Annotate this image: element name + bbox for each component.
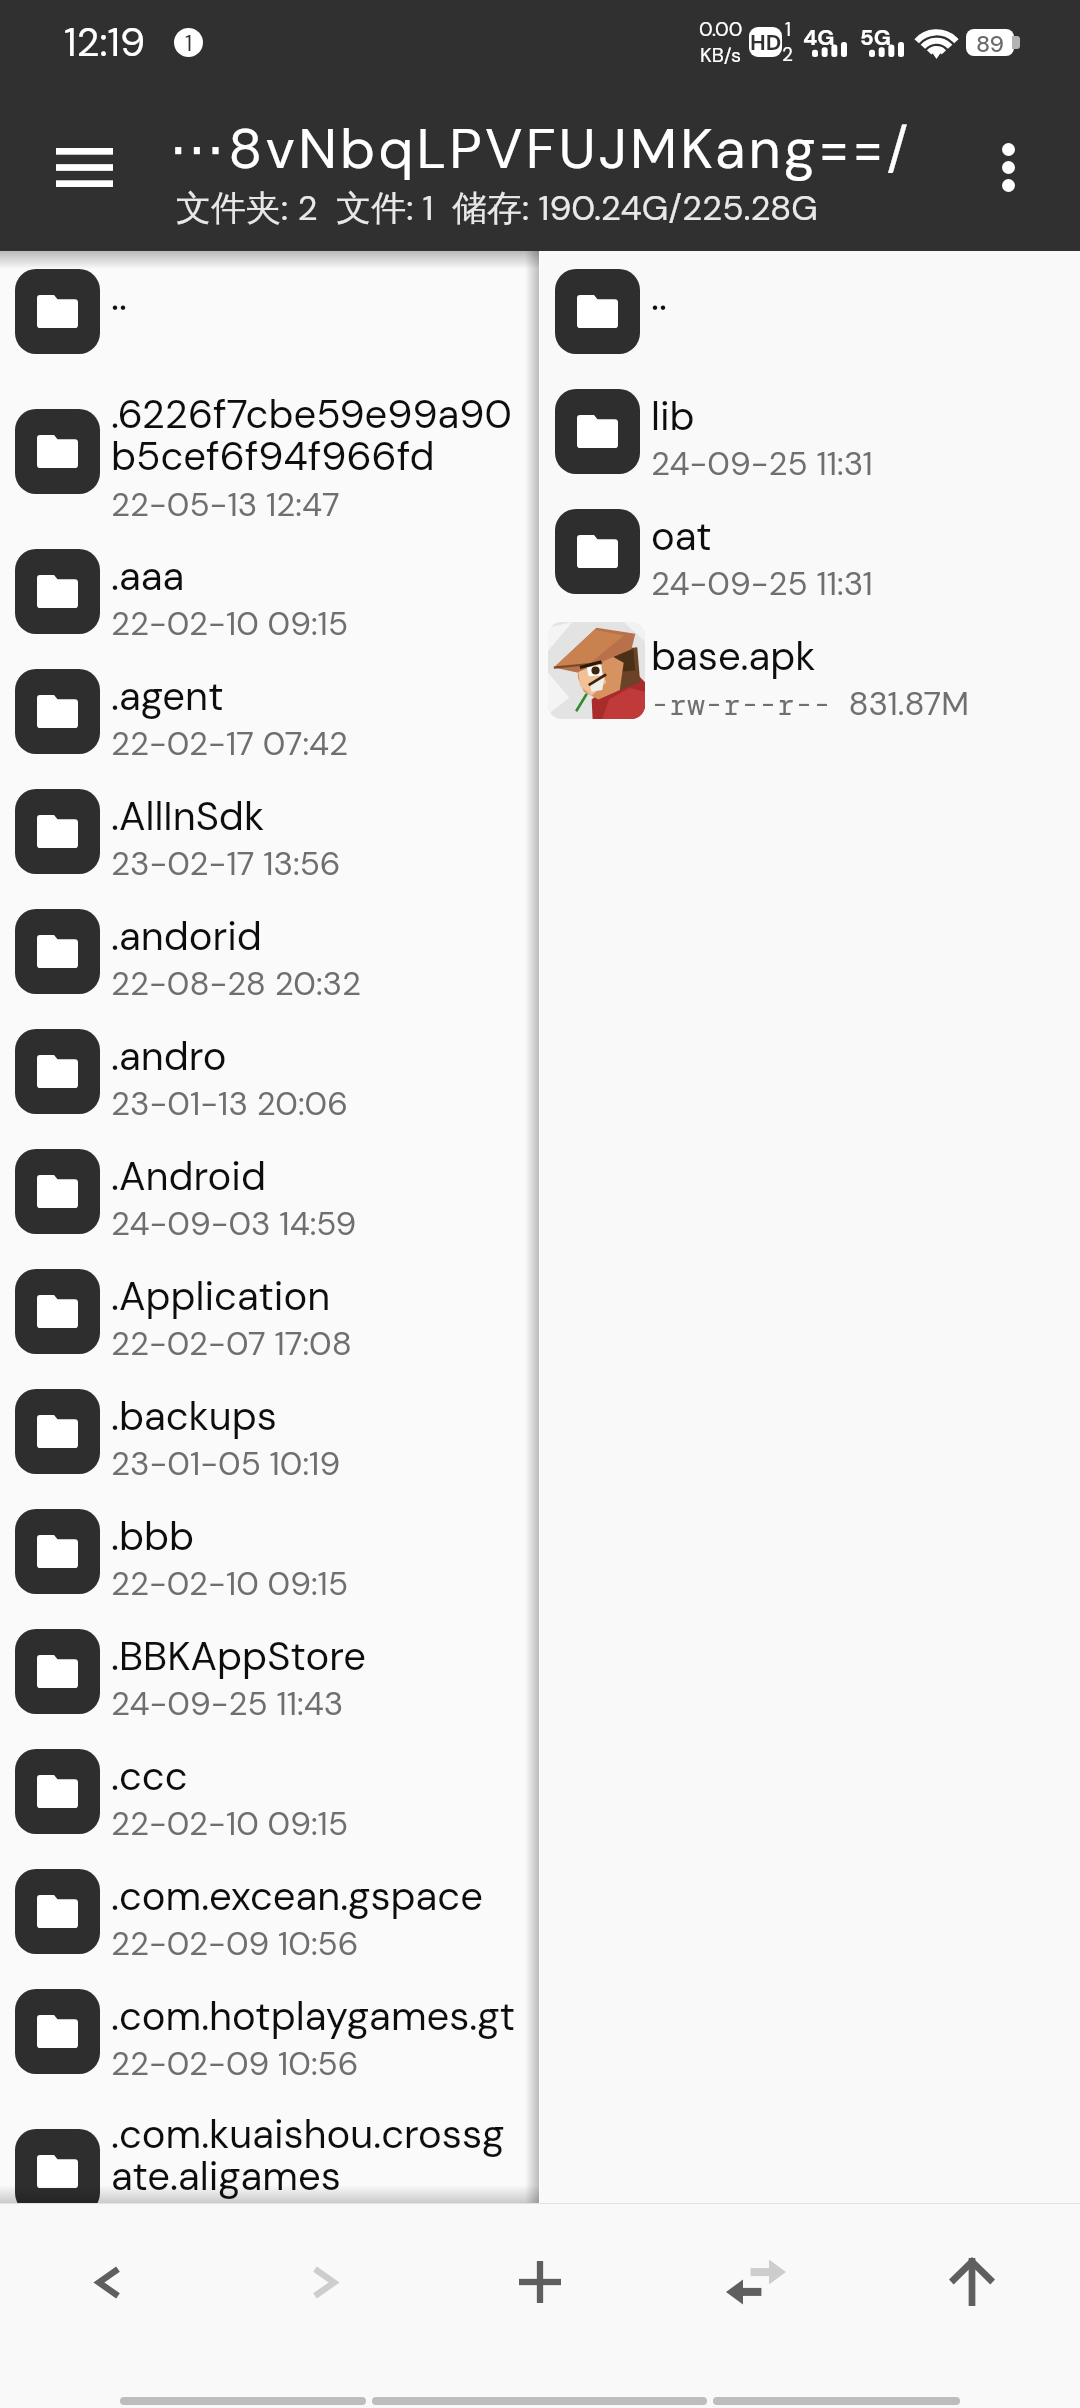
button[interactable]: lib <box>540 371 1080 491</box>
staticText: lib <box>651 390 695 442</box>
button[interactable]: Forward <box>216 2204 432 2360</box>
staticText: .backups <box>111 1390 277 1442</box>
button[interactable]: .bbb <box>0 1491 540 1611</box>
staticText: 1 <box>185 28 193 57</box>
staticText: .. <box>111 270 127 322</box>
staticText: 89 <box>976 29 1005 56</box>
staticText: 22-05-13 12:47 <box>111 483 340 526</box>
staticText: 22-08-28 20:32 <box>111 962 362 1005</box>
staticText: 22-02-10 09:15 <box>111 1562 349 1605</box>
button[interactable]: Up <box>864 2204 1080 2360</box>
staticText: 24-09-25 11:43 <box>111 1682 344 1725</box>
staticText: 22-02-10 09:15 <box>111 602 349 645</box>
staticText: 22-02-07 17:08 <box>111 1322 352 1365</box>
button[interactable]: .. <box>540 251 1080 371</box>
button[interactable]: .com.excean.gspace <box>0 1851 540 1971</box>
staticText: HD <box>750 28 782 57</box>
button[interactable]: Menu <box>14 124 154 210</box>
staticText: KB/s <box>700 42 742 68</box>
button[interactable]: Back <box>0 2204 216 2360</box>
staticText: .andro <box>111 1030 227 1082</box>
staticText: 22-02-09 10:56 <box>111 1922 359 1965</box>
staticText: 0.00 <box>699 16 743 42</box>
staticText: .. <box>651 270 667 322</box>
staticText: 1 <box>785 17 791 42</box>
button[interactable]: .6226f7cbe59e99a90b5cef6f94f966fd <box>0 371 540 531</box>
button[interactable]: .com.kuaishou.crossgate.aligames <box>0 2091 540 2203</box>
button[interactable]: oat <box>540 491 1080 611</box>
button[interactable]: .andorid <box>0 891 540 1011</box>
staticText: .bbb <box>111 1510 195 1562</box>
staticText: .agent <box>111 670 224 722</box>
staticText: 22-02-17 07:42 <box>111 722 349 765</box>
staticText: 22-02-10 09:15 <box>111 1802 349 1845</box>
staticText: .aaa <box>111 550 185 602</box>
staticText: .AllInSdk <box>111 790 265 842</box>
staticText: .6226f7cbe59e99a90b5cef6f94f966fd <box>111 388 521 483</box>
staticText: 23-01-05 10:19 <box>111 1442 341 1485</box>
staticText: 2 <box>782 42 793 67</box>
staticText: 24-09-03 14:59 <box>111 1202 357 1245</box>
button[interactable]: .Android <box>0 1131 540 1251</box>
staticText: 文件夹: 2 文件: 1 储存: 190.24G/225.28G <box>176 185 818 231</box>
button[interactable]: base.apk <box>540 611 1080 731</box>
staticText: oat <box>651 510 712 562</box>
staticText: .andorid <box>111 910 262 962</box>
button[interactable]: .aaa <box>0 531 540 651</box>
staticText: 22-02-09 10:56 <box>111 2042 359 2085</box>
staticText: -rw-r--r-- 831.87M <box>651 682 969 725</box>
button[interactable]: Swap panes <box>648 2204 864 2360</box>
button[interactable]: .BBKAppStore <box>0 1611 540 1731</box>
staticText: .com.hotplaygames.gt <box>111 1990 516 2042</box>
button[interactable]: .. <box>0 251 540 371</box>
staticText: .Android <box>111 1150 266 1202</box>
button[interactable]: .andro <box>0 1011 540 1131</box>
staticText: .BBKAppStore <box>111 1630 366 1682</box>
button[interactable]: More options <box>948 124 1068 210</box>
button[interactable]: .backups <box>0 1371 540 1491</box>
staticText: 24-09-25 11:31 <box>651 442 873 485</box>
staticText: 5G <box>860 23 891 52</box>
button[interactable]: New folder <box>432 2204 648 2360</box>
staticText: 23-02-17 13:56 <box>111 842 341 885</box>
staticText: .ccc <box>111 1750 188 1802</box>
button[interactable]: .ccc <box>0 1731 540 1851</box>
button[interactable]: .Application <box>0 1251 540 1371</box>
staticText: base.apk <box>651 630 816 682</box>
staticText: .Application <box>111 1270 331 1322</box>
staticText: ⋯8vNbqLPVFUJMKang==/ <box>169 112 912 185</box>
staticText: 24-09-25 11:31 <box>651 562 873 605</box>
staticText: 12:19 <box>64 16 146 68</box>
staticText: 4G <box>803 23 835 52</box>
button[interactable]: .AllInSdk <box>0 771 540 891</box>
staticText: .com.kuaishou.crossgate.aligames <box>111 2108 521 2203</box>
staticText: 23-01-13 20:06 <box>111 1082 348 1125</box>
button[interactable]: .agent <box>0 651 540 771</box>
staticText: .com.excean.gspace <box>111 1870 483 1922</box>
button[interactable]: .com.hotplaygames.gt <box>0 1971 540 2091</box>
